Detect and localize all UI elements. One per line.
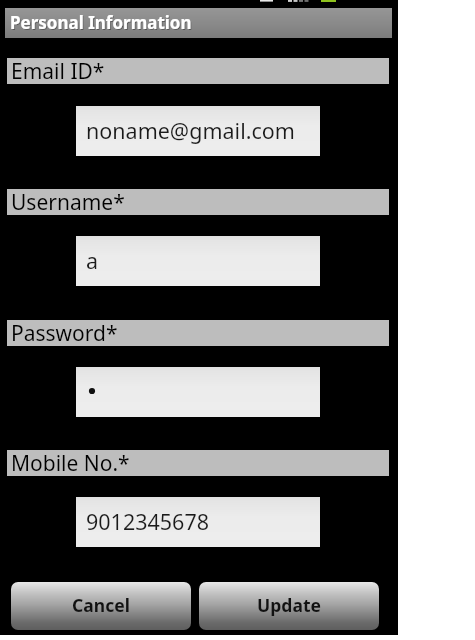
staticText: a: [86, 246, 99, 275]
staticText: Email ID*: [11, 57, 105, 83]
staticText: Password*: [11, 319, 118, 345]
button[interactable]: Update: [199, 582, 379, 630]
staticText: noname@gmail.com: [86, 116, 295, 145]
button[interactable]: a: [76, 236, 320, 286]
staticText: Cancel: [72, 593, 130, 617]
button[interactable]: 9012345678: [76, 497, 320, 547]
staticText: 9012345678: [86, 507, 209, 536]
button[interactable]: noname@gmail.com: [76, 106, 320, 156]
staticText: Update: [257, 593, 321, 617]
staticText: Mobile No.*: [11, 449, 130, 475]
staticText: Username*: [11, 188, 125, 214]
button[interactable]: Cancel: [11, 582, 191, 630]
staticText: Personal Information: [10, 11, 192, 34]
button[interactable]: Password: [76, 367, 320, 417]
staticText: Personal Information: [11, 12, 193, 35]
